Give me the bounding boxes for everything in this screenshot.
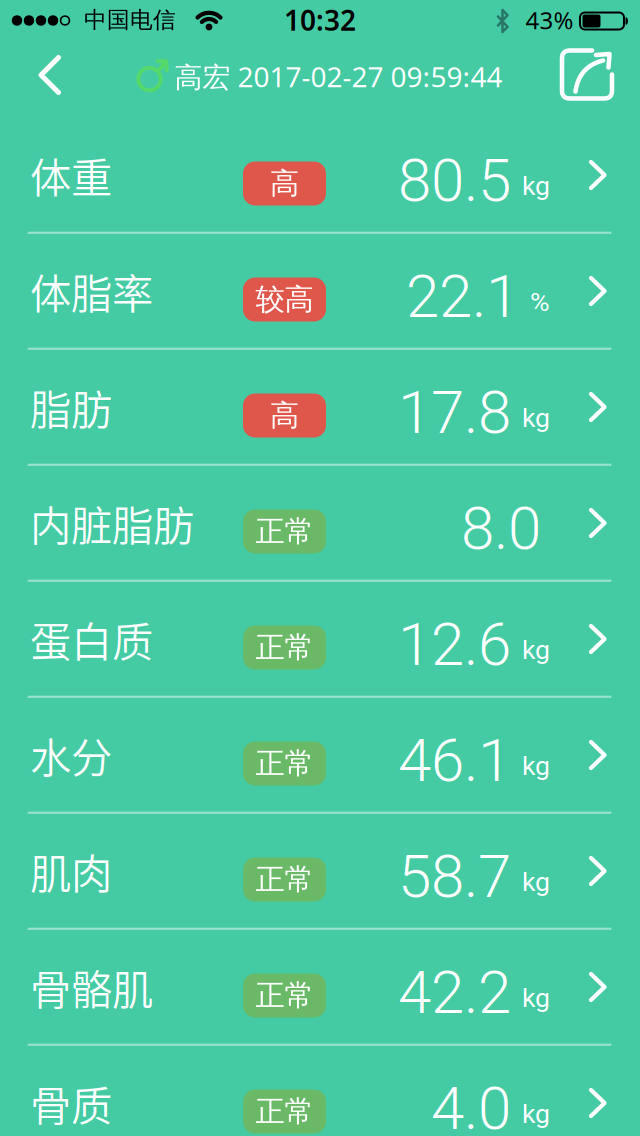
staticText: 46.1 xyxy=(398,725,511,796)
staticText: 17.8 xyxy=(398,377,511,448)
staticText: kg xyxy=(522,866,550,898)
staticText: kg xyxy=(522,170,550,202)
staticText: 正常 xyxy=(255,629,313,665)
button[interactable]: Back xyxy=(22,48,77,101)
staticText: 高 xyxy=(270,165,299,201)
button[interactable]: 体重 xyxy=(0,118,640,234)
button[interactable]: 蛋白质 xyxy=(0,582,640,698)
staticText: 体脂率 xyxy=(30,261,153,321)
staticText: 58.7 xyxy=(398,841,511,912)
staticText: kg xyxy=(522,634,550,666)
staticText: 较高 xyxy=(255,281,313,317)
staticText: 80.5 xyxy=(398,145,511,216)
staticText: 4.0 xyxy=(431,1073,511,1136)
staticText: kg xyxy=(522,750,550,782)
staticText: kg xyxy=(522,1098,550,1130)
staticText: 内脏脂肪 xyxy=(30,493,194,553)
staticText: % xyxy=(530,286,550,318)
staticText: 22.1 xyxy=(406,261,519,332)
staticText: kg xyxy=(522,402,550,434)
staticText: 中国电信 xyxy=(84,6,176,34)
staticText: 8.0 xyxy=(461,493,541,564)
staticText: 正常 xyxy=(255,1093,313,1129)
staticText: 体重 xyxy=(30,145,112,205)
button[interactable]: Share xyxy=(550,38,624,110)
staticText: 42.2 xyxy=(398,957,511,1028)
staticText: 43% xyxy=(525,4,573,36)
staticText: 骨质 xyxy=(30,1073,112,1133)
staticText: 正常 xyxy=(255,513,313,549)
staticText: 正常 xyxy=(255,977,313,1013)
staticText: 脂肪 xyxy=(30,377,112,437)
staticText: 水分 xyxy=(30,725,112,785)
staticText: 高 xyxy=(270,397,299,433)
button[interactable]: 肌肉 xyxy=(0,814,640,930)
staticText: 正常 xyxy=(255,745,313,781)
staticText: 高宏 2017-02-27 09:59:44 xyxy=(174,58,502,95)
button[interactable]: 脂肪 xyxy=(0,350,640,466)
staticText: 肌肉 xyxy=(30,841,112,901)
staticText: kg xyxy=(522,982,550,1014)
staticText: 10:32 xyxy=(284,1,356,39)
staticText: 蛋白质 xyxy=(30,609,153,669)
button[interactable]: 体脂率 xyxy=(0,234,640,350)
staticText: 正常 xyxy=(255,861,313,897)
staticText: 骨骼肌 xyxy=(30,957,153,1017)
button[interactable]: 水分 xyxy=(0,698,640,814)
button[interactable]: 骨骼肌 xyxy=(0,930,640,1046)
button[interactable]: 骨质 xyxy=(0,1046,640,1136)
button[interactable]: 内脏脂肪 xyxy=(0,466,640,582)
staticText: 12.6 xyxy=(398,609,511,680)
